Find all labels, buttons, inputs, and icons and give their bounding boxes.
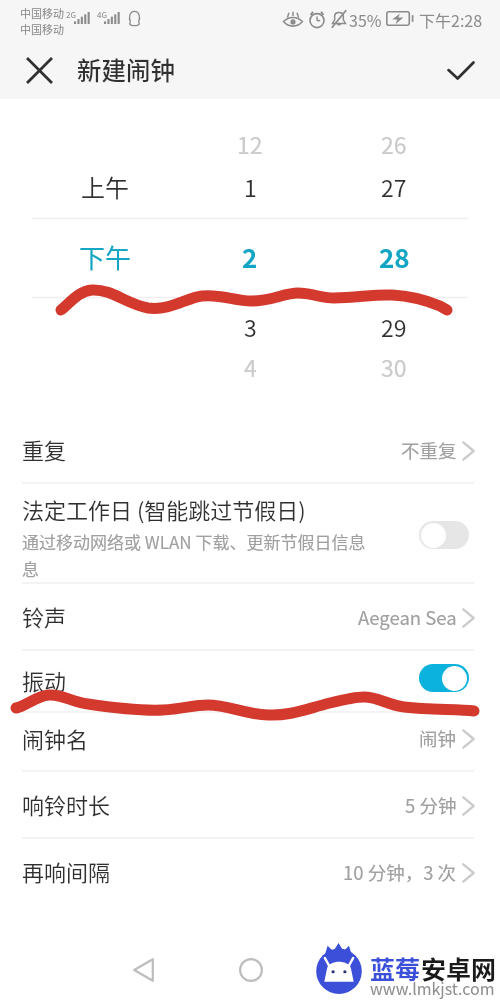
staticText: 2G [66,9,76,21]
staticText: 2 [242,238,258,276]
staticText: 27 [381,170,407,203]
staticText: 1 [244,170,257,203]
staticText: 新建闹钟 [77,52,175,87]
button[interactable]: Toggle [419,664,469,692]
staticText: 上午 [81,169,129,204]
staticText: 铃声 [22,600,67,632]
staticText: 12 [237,127,263,160]
staticText: 30 [381,350,407,383]
staticText: 3 [244,310,257,343]
staticText: 振动 [22,664,67,696]
staticText: 下午2:28 [419,8,483,31]
button[interactable]: 铃声 [0,584,500,650]
button[interactable]: 闹钟名 [0,706,500,771]
staticText: 5 分钟 [405,792,457,819]
button[interactable]: Home [227,946,275,994]
staticText: 通过移动网络或 WLAN 下载、更新节假日信息息 [22,529,380,581]
staticText: Aegean Sea [358,604,457,631]
staticText: 4G [97,9,107,21]
staticText: 26 [381,127,407,160]
button[interactable]: 响铃时长 [0,772,500,838]
staticText: 再响间隔 [22,855,111,887]
staticText: 中国移动 [20,21,64,37]
button[interactable]: 法定工作日 (智能跳过节假日) [0,487,500,583]
staticText: 下午 [79,238,132,276]
staticText: 闹钟 [419,725,457,752]
staticText: 29 [381,310,407,343]
staticText: 响铃时长 [22,788,111,820]
button[interactable]: Back [119,946,167,994]
staticText: 闹钟名 [22,722,89,754]
staticText: 10 分钟，3 次 [343,859,457,886]
staticText: 不重复 [401,437,457,464]
staticText: 4 [244,350,257,383]
button[interactable]: Confirm [439,48,483,92]
staticText: 35% [349,8,382,31]
staticText: 中国移动 [20,5,64,21]
button[interactable]: 振动 [0,645,500,710]
button[interactable]: Close [17,48,61,92]
button[interactable]: Toggle [419,521,469,549]
staticText: 重复 [22,433,67,465]
button[interactable]: 重复 [0,417,500,483]
staticText: 蓝莓 [370,950,421,986]
staticText: www.lmkjst.com [370,976,495,999]
button[interactable]: 再响间隔 [0,839,500,905]
staticText: 安卓网 [421,950,497,986]
staticText: 法定工作日 (智能跳过节假日) [22,493,306,525]
staticText: 28 [379,238,410,276]
